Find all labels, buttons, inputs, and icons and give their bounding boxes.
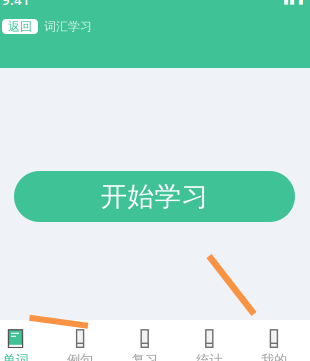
staticText: 复习 (132, 352, 158, 361)
button[interactable]: 单词 (0, 320, 48, 361)
staticText: 例句 (67, 352, 93, 361)
staticText: 返回 (8, 19, 32, 34)
staticText: 词汇学习 (44, 19, 92, 34)
button[interactable]: 复习 (112, 320, 177, 361)
staticText: 开始学习 (100, 180, 208, 213)
button[interactable]: 我的 (242, 320, 306, 361)
staticText: 单词 (2, 352, 28, 361)
button[interactable]: 开始学习 (14, 171, 295, 222)
staticText: 9:41 (2, 0, 30, 9)
staticText: ▮▮ ▮ (283, 0, 304, 6)
staticText: 我的 (261, 352, 287, 361)
button[interactable]: 例句 (48, 320, 112, 361)
staticText: 统计 (196, 352, 222, 361)
button[interactable]: 返回 (2, 19, 38, 34)
button[interactable]: 统计 (177, 320, 242, 361)
